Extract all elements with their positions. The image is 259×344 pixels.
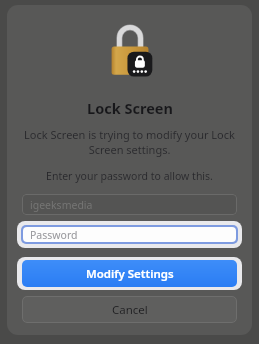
button[interactable]: Password	[23, 227, 236, 242]
button[interactable]: igeeksmedia	[22, 194, 237, 215]
staticText: Lock Screen	[87, 98, 173, 118]
button[interactable]: Cancel	[22, 296, 237, 323]
staticText: Enter your password to allow this.	[46, 169, 213, 183]
staticText: Cancel	[112, 302, 148, 318]
staticText: Modify Settings	[86, 266, 174, 282]
staticText: Lock Screen is trying to modify your Loc…	[17, 127, 242, 157]
staticText: igeeksmedia	[30, 198, 93, 212]
other: Lock Screen settings lock	[107, 25, 153, 79]
staticText: Password	[30, 228, 78, 242]
button[interactable]: Modify Settings	[22, 260, 237, 287]
